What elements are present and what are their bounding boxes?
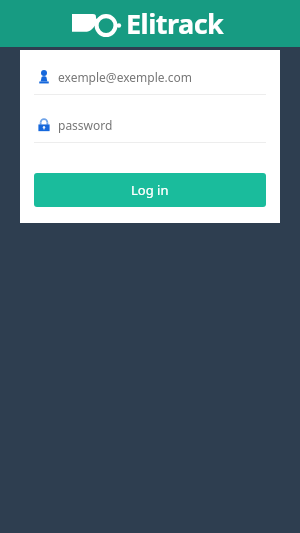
button[interactable]: Log in [34,173,266,207]
other: Password [34,118,54,132]
staticText: Elitrack [126,5,224,42]
staticText: Log in [131,181,169,199]
staticText: password [58,117,113,133]
other: User [34,70,54,84]
staticText: exemple@exemple.com [58,69,192,85]
button[interactable]: User [34,66,266,88]
button[interactable]: Password [34,114,266,136]
